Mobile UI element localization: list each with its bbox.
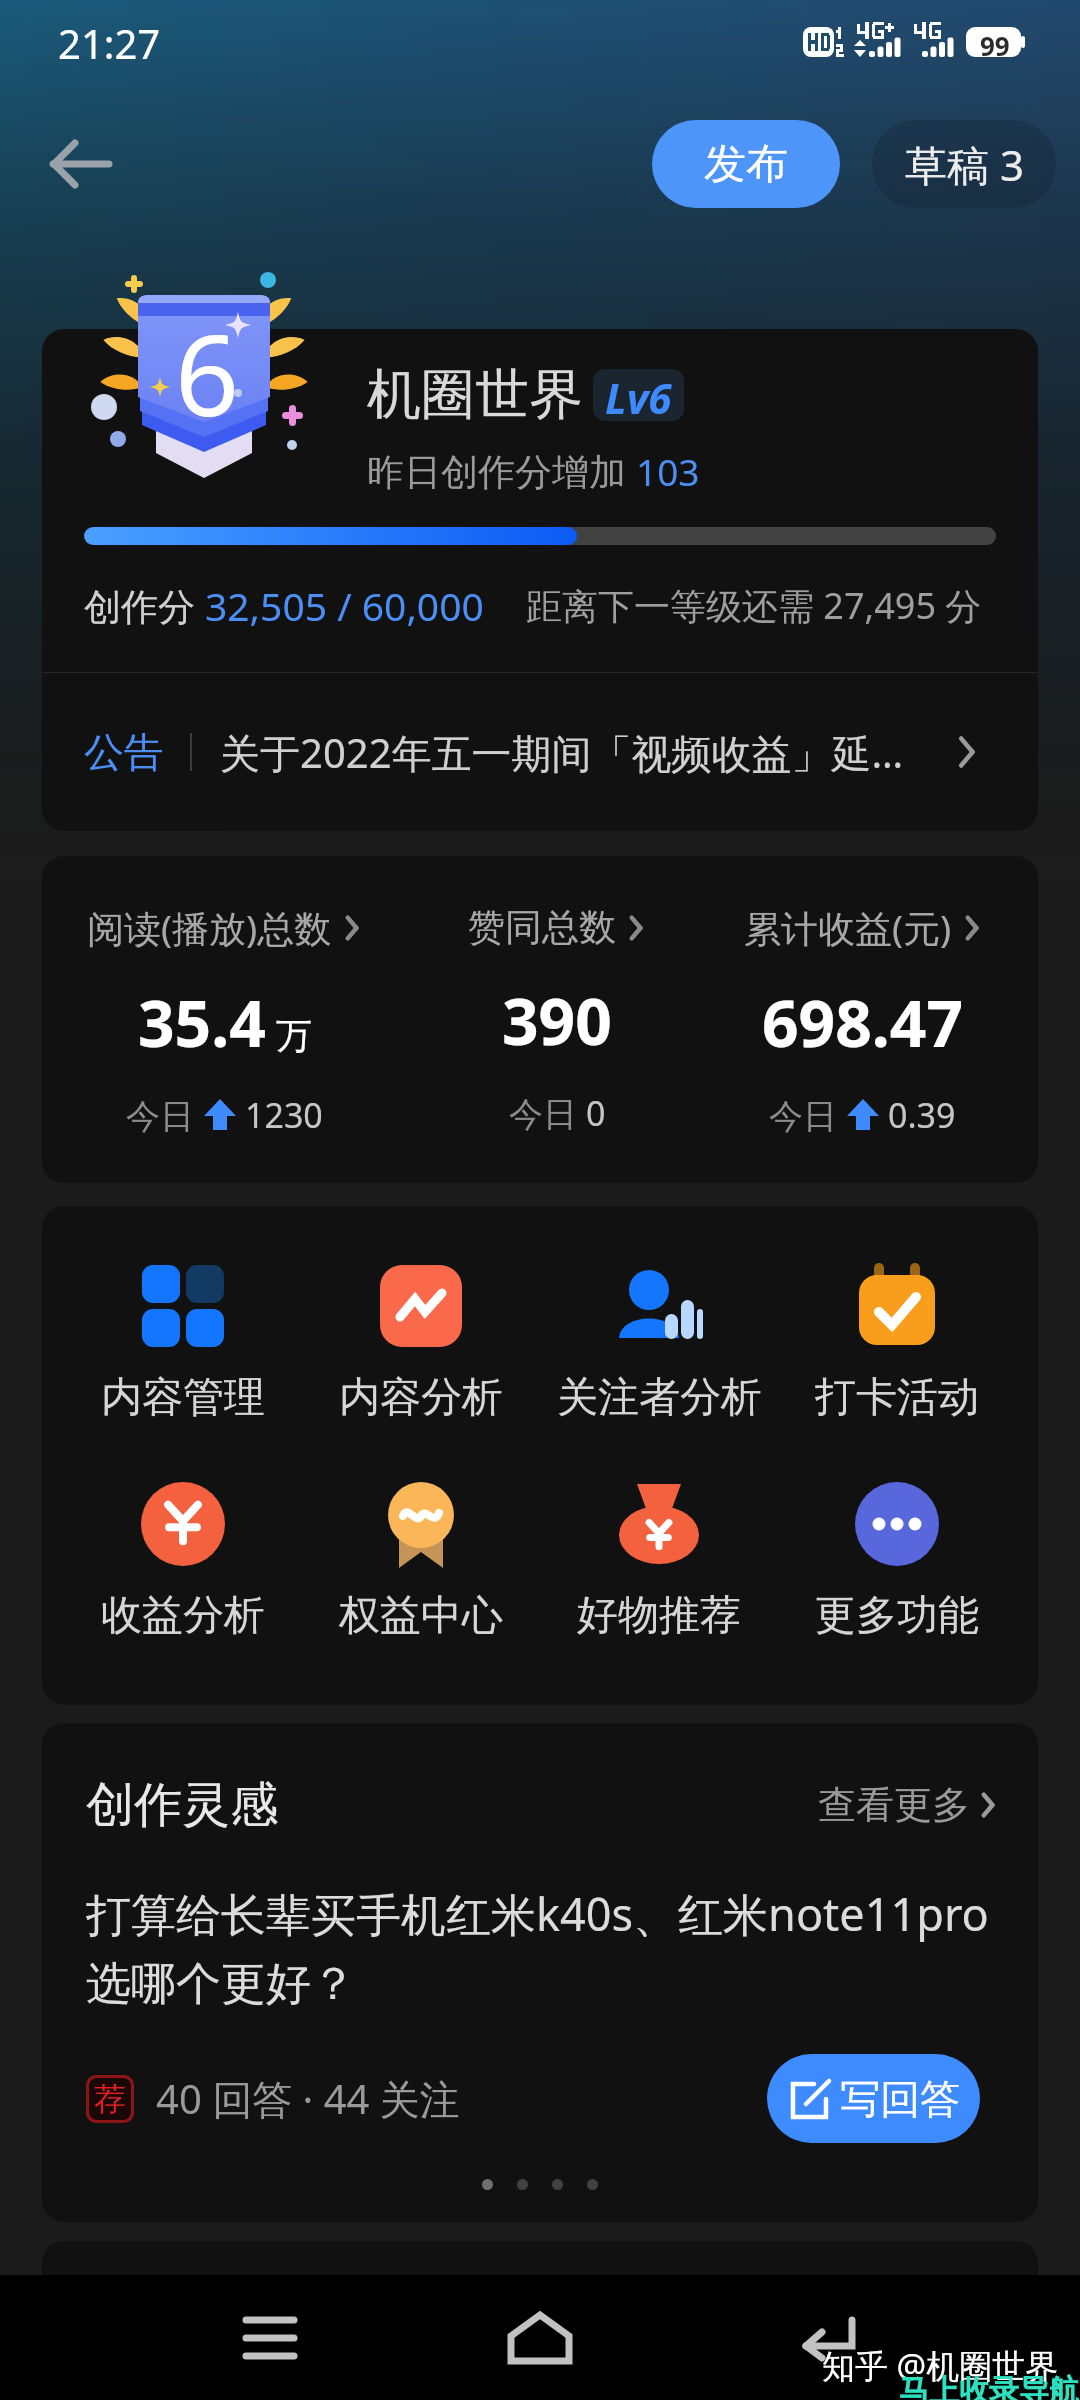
button[interactable]: Home: [484, 2295, 596, 2381]
button[interactable]: 赞同总数: [407, 856, 707, 1183]
staticText: 草稿 3: [905, 136, 1024, 193]
staticText: 累计收益(元): [744, 902, 952, 953]
staticText: 打算给长辈买手机红米k40s、红米note11pro选哪个更好？: [86, 1883, 994, 2012]
button[interactable]: 发布: [652, 120, 840, 208]
staticText: 0: [586, 1090, 606, 1136]
staticText: 内容管理: [101, 1372, 265, 1424]
button[interactable]: 好物推荐: [540, 1478, 778, 1642]
button[interactable]: 写回答: [767, 2054, 980, 2143]
staticText: 发布: [704, 138, 788, 191]
staticText: 关注者分析: [557, 1372, 762, 1424]
staticText: 更多功能: [815, 1590, 979, 1642]
staticText: 好物推荐: [577, 1590, 741, 1642]
button[interactable]: 公告: [42, 673, 1038, 831]
staticText: 今日: [769, 1092, 846, 1138]
button[interactable]: 更多功能: [778, 1478, 1016, 1642]
staticText: 昨日创作分增加: [367, 445, 636, 496]
staticText: 40 回答 · 44 关注: [156, 2071, 460, 2126]
staticText: 收益分析: [101, 1590, 265, 1642]
staticText: 今日: [509, 1090, 586, 1136]
staticText: 创作分: [84, 580, 205, 631]
button[interactable]: Back: [28, 112, 132, 216]
staticText: 创作灵感: [86, 1775, 278, 1835]
staticText: 阅读(播放)总数: [87, 902, 332, 953]
staticText: 698.47: [762, 979, 964, 1066]
button[interactable]: 草稿 3: [872, 120, 1056, 208]
staticText: 0.39: [888, 1092, 956, 1138]
button[interactable]: 内容管理: [64, 1260, 302, 1424]
staticText: 99: [980, 28, 1010, 63]
staticText: 32,505 / 60,000: [205, 579, 484, 632]
button[interactable]: Recents: [214, 2295, 326, 2381]
staticText: 赞同总数: [468, 904, 616, 951]
button[interactable]: 关注者分析: [540, 1260, 778, 1424]
staticText: 荐: [94, 2079, 126, 2119]
button[interactable]: 收益分析: [64, 1478, 302, 1642]
staticText: 查看更多: [818, 1781, 970, 1829]
staticText: 公告: [84, 727, 164, 777]
staticText: 马上收录导航: [899, 2372, 1079, 2400]
staticText: 内容分析: [339, 1372, 503, 1424]
button[interactable]: 累计收益(元): [707, 856, 1018, 1183]
button[interactable]: 阅读(播放)总数: [42, 856, 407, 1183]
staticText: 6: [175, 296, 240, 449]
staticText: 知乎 @机圈世界: [822, 2343, 1059, 2388]
staticText: 写回答: [840, 2074, 960, 2124]
staticText: 万: [276, 1013, 312, 1058]
staticText: 距离下一等级还需 27,495 分: [526, 581, 982, 630]
staticText: 103: [636, 446, 700, 496]
staticText: 今日: [126, 1092, 203, 1138]
staticText: 机圈世界: [367, 361, 583, 429]
button[interactable]: 打卡活动: [778, 1260, 1016, 1424]
button[interactable]: 内容分析: [302, 1260, 540, 1424]
staticText: 打卡活动: [815, 1372, 979, 1424]
staticText: 390: [502, 977, 612, 1064]
staticText: 关于2022年五一期间「视频收益」延…: [220, 725, 951, 780]
button[interactable]: 查看更多: [818, 1781, 998, 1829]
button[interactable]: 权益中心: [302, 1478, 540, 1642]
button[interactable]: Back: [771, 2295, 883, 2381]
staticText: 权益中心: [339, 1590, 503, 1642]
staticText: 1230: [245, 1092, 323, 1138]
staticText: Lv6: [605, 369, 672, 421]
staticText: 21:27: [58, 16, 161, 70]
staticText: 35.4: [138, 979, 266, 1066]
